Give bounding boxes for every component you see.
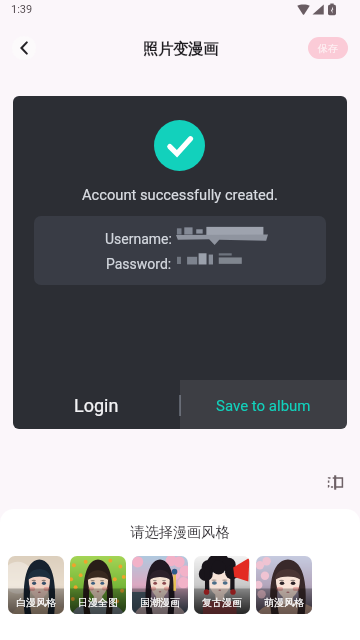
button[interactable]: Save to album (180, 380, 347, 429)
button[interactable]: Back (12, 36, 36, 60)
staticText: 萌漫风格 (264, 596, 304, 609)
staticText: 1:39 (11, 3, 33, 16)
button[interactable]: Compare before and after (322, 469, 348, 495)
button[interactable]: 萌漫风格 (256, 556, 312, 614)
button[interactable]: 日漫全图 (70, 556, 126, 614)
staticText: Save to album (216, 397, 311, 415)
staticText: 白漫风格 (16, 596, 56, 609)
staticText: 日漫全图 (78, 596, 118, 609)
button[interactable]: 复古漫画 (194, 556, 250, 614)
staticText: 国潮漫画 (140, 596, 180, 609)
button[interactable]: 国潮漫画 (132, 556, 188, 614)
staticText: 照片变漫画 (143, 40, 218, 59)
staticText: 请选择漫画风格 (0, 523, 360, 541)
button[interactable]: Login (13, 380, 180, 429)
staticText: 复古漫画 (202, 596, 242, 609)
button[interactable]: 保存 (308, 37, 348, 59)
staticText: Account successfully created. (82, 186, 278, 203)
staticText: Login (74, 395, 119, 416)
staticText: Password: (106, 256, 172, 272)
staticText: Username: (105, 231, 172, 247)
staticText: 保存 (318, 42, 338, 55)
button[interactable]: 白漫风格 (8, 556, 64, 614)
